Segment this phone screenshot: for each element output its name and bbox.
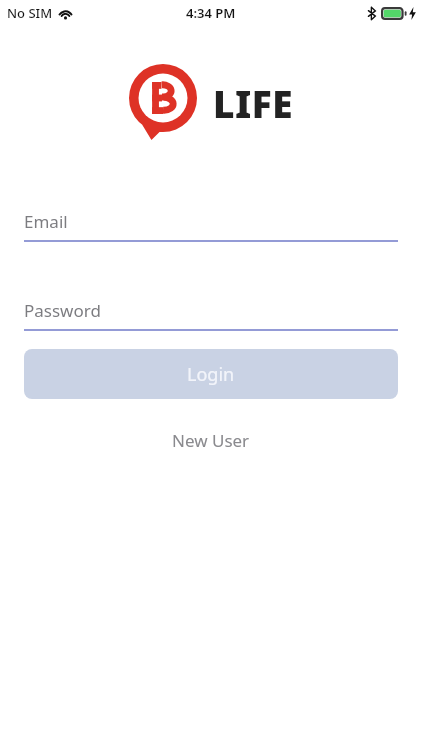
staticText: Email <box>24 210 68 233</box>
button[interactable]: Email <box>24 210 398 242</box>
other: Battery charging <box>381 7 407 20</box>
button[interactable]: Login <box>24 349 398 399</box>
staticText: No SIM <box>7 4 53 22</box>
other: Wi-Fi <box>58 8 73 19</box>
staticText: Password <box>24 299 101 322</box>
staticText: Login <box>187 362 235 387</box>
other: B LIFE logo <box>129 64 197 140</box>
button[interactable]: Password <box>24 299 398 331</box>
staticText: 4:34 PM <box>186 4 236 22</box>
staticText: New User <box>172 429 250 452</box>
other: Bluetooth <box>368 7 376 20</box>
staticText: LIFE <box>213 78 294 128</box>
button[interactable]: New User <box>158 423 264 458</box>
